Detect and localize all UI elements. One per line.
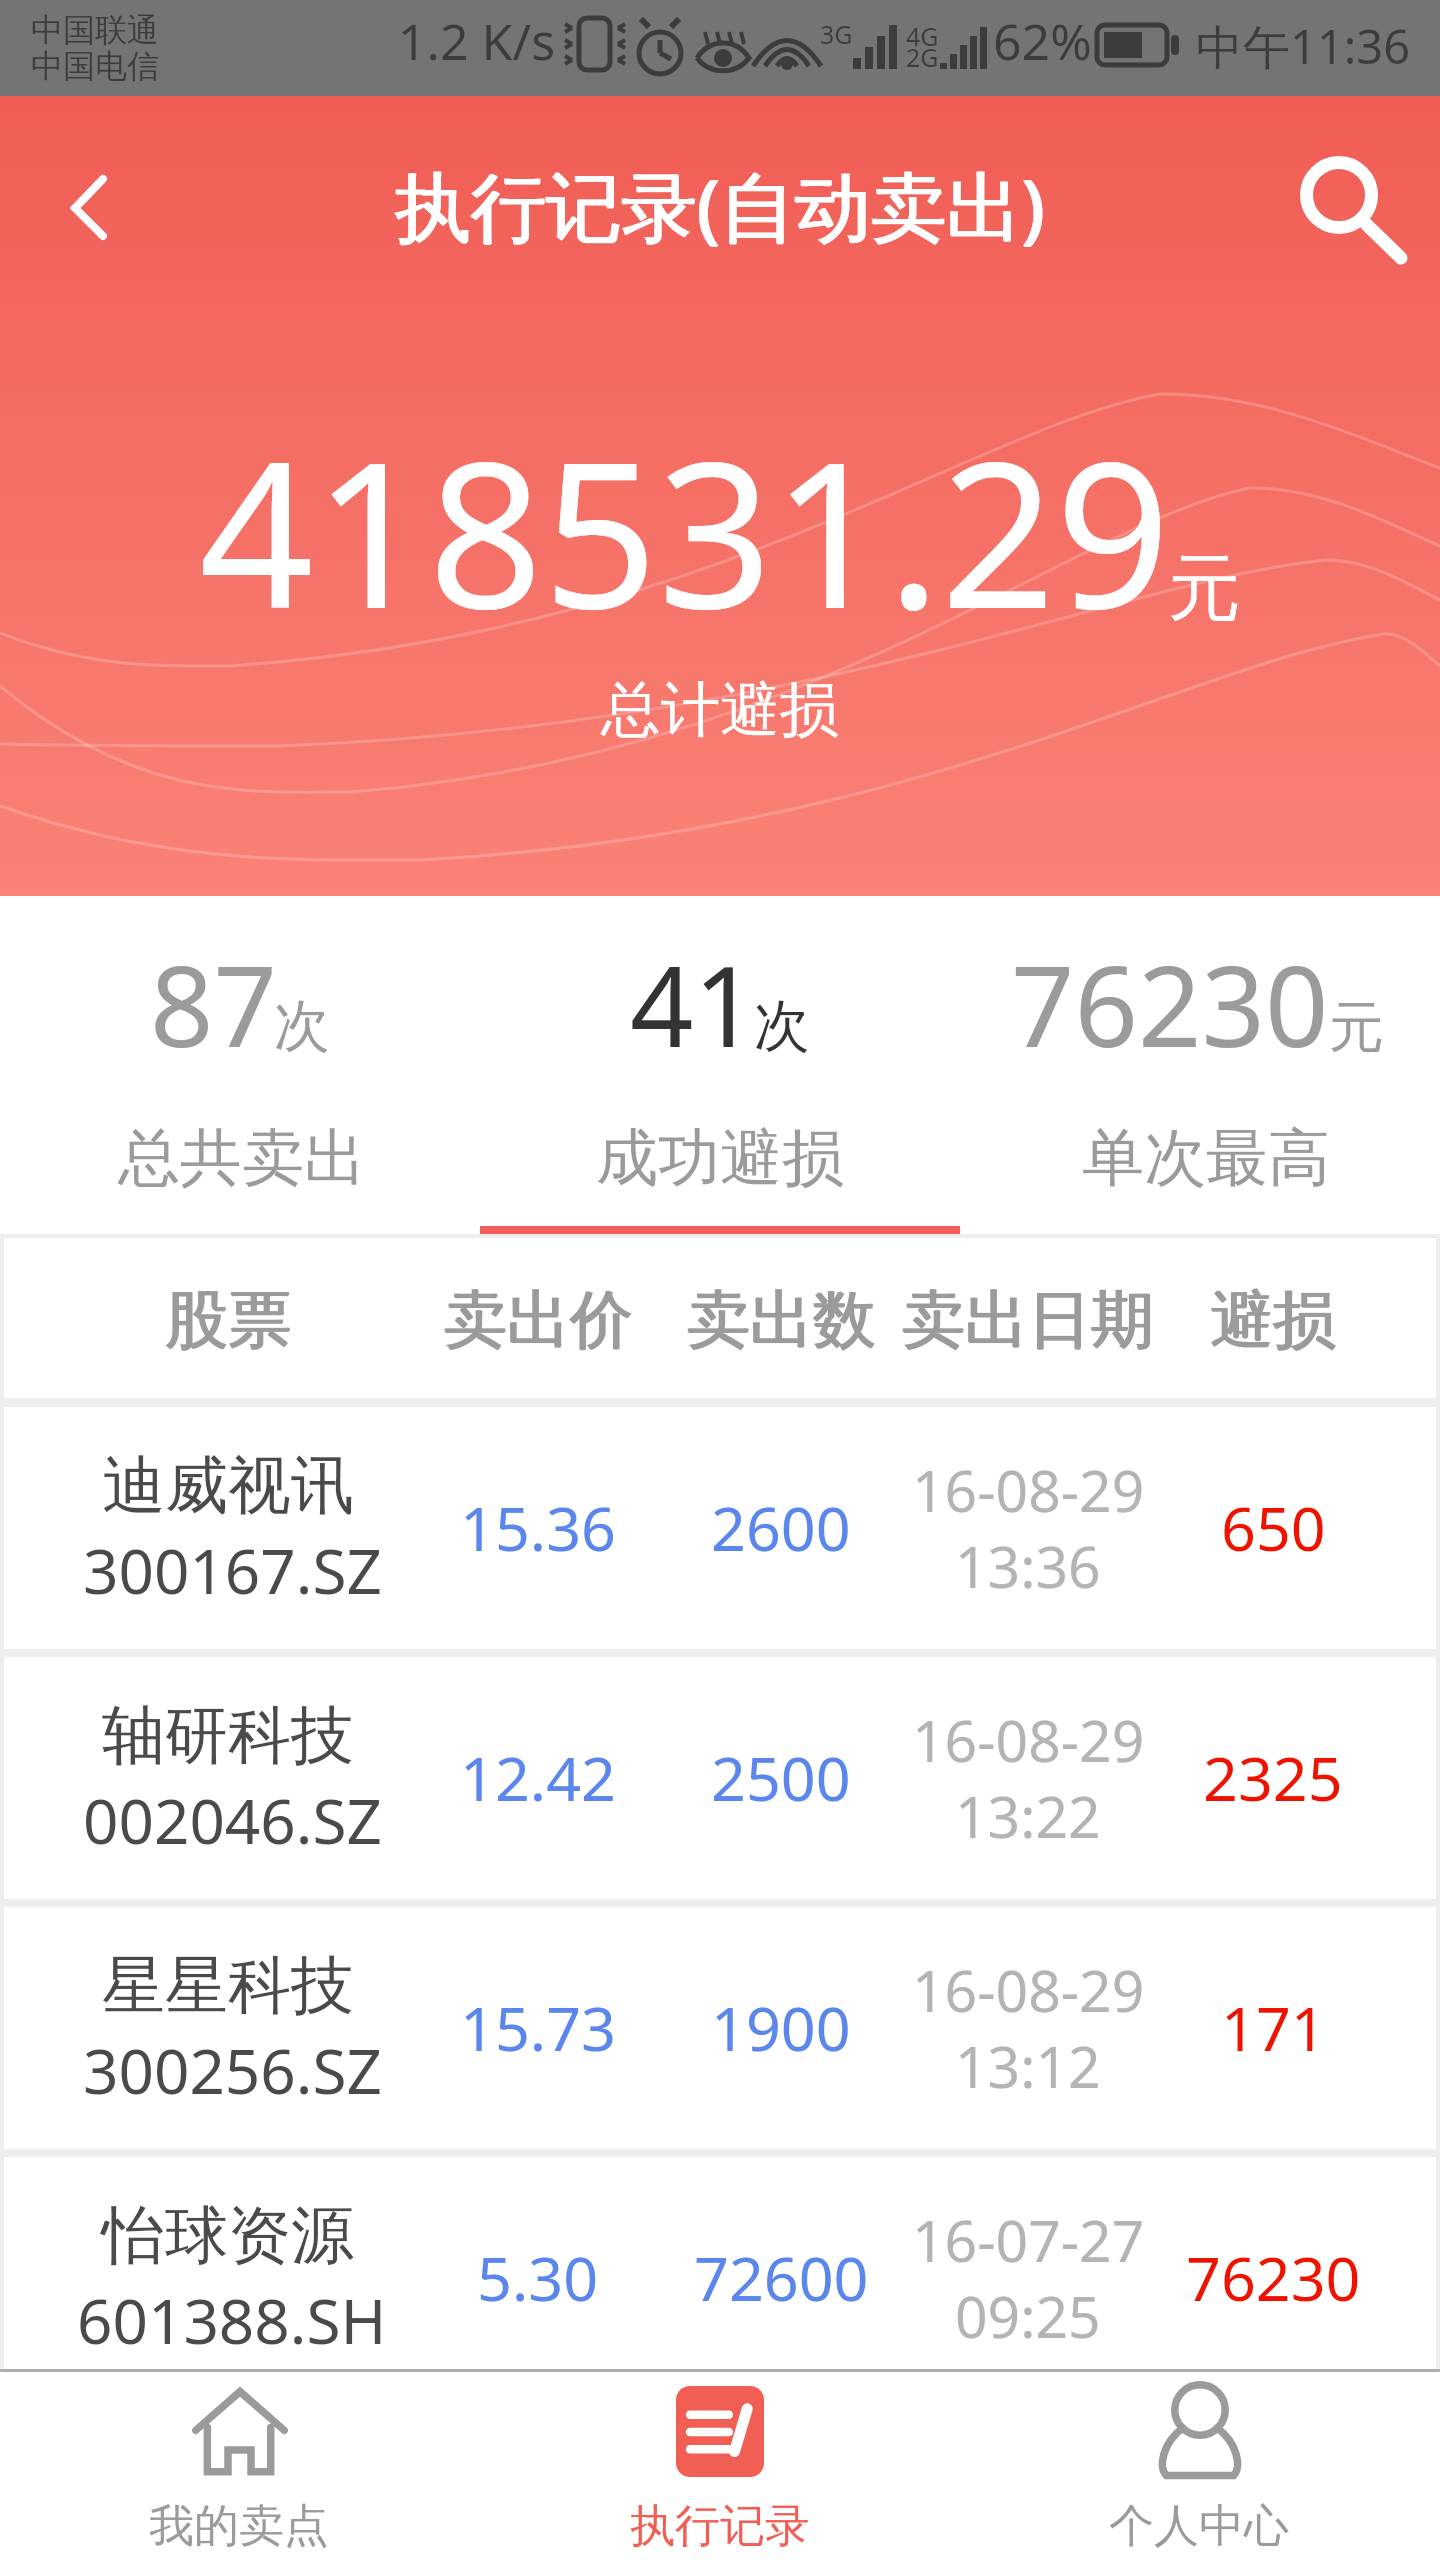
staticText: 避损 <box>1211 1280 1337 1359</box>
staticText: 1.2 K/s <box>398 7 556 75</box>
staticText: 16-08-29 <box>912 1701 1145 1779</box>
staticText: 执行记录(自动卖出) <box>394 153 1044 256</box>
staticText: 中午11:36 <box>1196 14 1411 78</box>
staticText: 怡球资源 <box>102 2196 354 2275</box>
staticText: 执行记录 <box>630 2498 810 2555</box>
staticText: 16-08-29 <box>912 1451 1145 1529</box>
staticText: 卖出价 <box>444 1281 633 1360</box>
button[interactable]: Back <box>9 128 169 288</box>
staticText: 2500 <box>711 1736 851 1819</box>
staticText: 76230 <box>1186 2236 1361 2319</box>
staticText: 2325 <box>1203 1736 1343 1819</box>
staticText: 002046.SZ <box>83 1778 382 1862</box>
staticText: 我的卖点 <box>149 2498 329 2555</box>
staticText: 轴研科技 <box>102 1696 354 1775</box>
button[interactable]: 迪威视讯 <box>4 1407 1436 1649</box>
staticText: 次 <box>274 991 330 1062</box>
button[interactable]: 我的卖点 <box>0 2372 480 2560</box>
staticText: 2G <box>906 40 939 74</box>
staticText: 执行记录(自动卖出) <box>396 153 1046 256</box>
button[interactable]: 76230 <box>960 900 1440 1234</box>
staticText: 300256.SZ <box>83 2028 382 2112</box>
staticText: 13:22 <box>955 1777 1101 1855</box>
staticText: 卖出数 <box>686 1280 875 1359</box>
staticText: 601388.SH <box>77 2278 387 2362</box>
staticText: 16-08-29 <box>912 1951 1145 2029</box>
staticText: 元 <box>1329 993 1384 1062</box>
staticText: 87 <box>150 928 277 1079</box>
staticText: 09:25 <box>955 2277 1101 2355</box>
staticText: 中国电信 <box>31 46 159 86</box>
staticText: 执行记录(自动卖出) <box>395 154 1045 257</box>
staticText: 300167.SZ <box>83 1528 382 1612</box>
staticText: 避损 <box>1210 1281 1336 1360</box>
staticText: 418531.29 <box>199 394 1171 667</box>
staticText: 迪威视讯 <box>102 1446 354 1525</box>
staticText: 成功避损 <box>596 1119 844 1197</box>
staticText: 卖出价 <box>443 1280 632 1359</box>
staticText: 中国联通 <box>31 10 159 50</box>
staticText: 76230 <box>1011 928 1329 1079</box>
staticText: 13:36 <box>955 1527 1101 1605</box>
staticText: 650 <box>1221 1486 1326 1569</box>
staticText: 个人中心 <box>1109 2498 1289 2555</box>
button[interactable]: 执行记录 <box>480 2372 960 2560</box>
staticText: 避损 <box>1209 1280 1335 1359</box>
staticText: 单次最高 <box>1082 1119 1330 1197</box>
staticText: 1900 <box>711 1986 851 2069</box>
staticText: 171 <box>1221 1986 1326 2069</box>
button[interactable]: 87 <box>0 900 480 1234</box>
button[interactable]: 怡球资源 <box>4 2157 1436 2369</box>
button[interactable]: 个人中心 <box>960 2372 1440 2560</box>
staticText: 卖出日期 <box>903 1280 1155 1359</box>
staticText: 总计避损 <box>601 673 839 748</box>
staticText: 15.36 <box>460 1486 616 1569</box>
staticText: 72600 <box>694 2236 869 2319</box>
staticText: 卖出日期 <box>902 1281 1154 1360</box>
staticText: 3G <box>820 17 853 51</box>
button[interactable]: 星星科技 <box>4 1907 1436 2149</box>
staticText: 元 <box>1168 543 1241 635</box>
staticText: 41 <box>630 928 757 1079</box>
staticText: 卖出数 <box>688 1280 877 1359</box>
staticText: 13:12 <box>955 2027 1101 2105</box>
staticText: 12.42 <box>460 1736 616 1819</box>
staticText: 次 <box>754 991 810 1062</box>
staticText: 卖出数 <box>687 1281 876 1360</box>
staticText: 卖出日期 <box>901 1280 1153 1359</box>
button[interactable]: Search <box>1272 128 1432 288</box>
staticText: 4G <box>906 19 939 53</box>
button[interactable]: 41 <box>480 900 960 1234</box>
staticText: 总共卖出 <box>118 1119 366 1197</box>
staticText: 2600 <box>711 1486 851 1569</box>
staticText: 股票 <box>166 1280 292 1359</box>
staticText: 62% <box>993 7 1092 75</box>
staticText: 卖出价 <box>445 1280 634 1359</box>
staticText: 16-07-27 <box>912 2201 1145 2279</box>
button[interactable]: 轴研科技 <box>4 1657 1436 1899</box>
staticText: 股票 <box>165 1281 291 1360</box>
staticText: 5.30 <box>477 2236 599 2319</box>
staticText: 星星科技 <box>102 1946 354 2025</box>
staticText: 15.73 <box>460 1986 616 2069</box>
staticText: 股票 <box>164 1280 290 1359</box>
